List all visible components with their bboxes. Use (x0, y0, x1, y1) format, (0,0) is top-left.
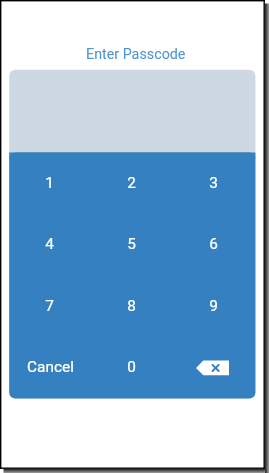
staticText: 9 (209, 297, 218, 315)
button[interactable]: 8 (91, 276, 173, 338)
button[interactable]: 3 (173, 153, 255, 215)
staticText: 2 (127, 174, 136, 192)
staticText: 7 (45, 297, 54, 315)
staticText: 3 (209, 174, 218, 192)
button[interactable]: Cancel (9, 337, 91, 399)
button[interactable]: 6 (173, 214, 255, 276)
button[interactable]: 0 (91, 337, 173, 399)
staticText: 4 (45, 235, 54, 253)
button[interactable]: Backspace (173, 337, 255, 399)
staticText: 6 (209, 235, 218, 253)
button[interactable]: 1 (9, 153, 91, 215)
button[interactable]: 7 (9, 276, 91, 338)
button[interactable]: 2 (91, 153, 173, 215)
staticText: 8 (127, 297, 136, 315)
staticText: 0 (127, 358, 136, 376)
staticText: 5 (127, 235, 136, 253)
button[interactable]: 5 (91, 214, 173, 276)
button[interactable]: 4 (9, 214, 91, 276)
staticText: 1 (45, 174, 54, 192)
button[interactable]: 9 (173, 276, 255, 338)
staticText: Cancel (27, 358, 74, 376)
staticText: Enter Passcode (86, 46, 186, 63)
